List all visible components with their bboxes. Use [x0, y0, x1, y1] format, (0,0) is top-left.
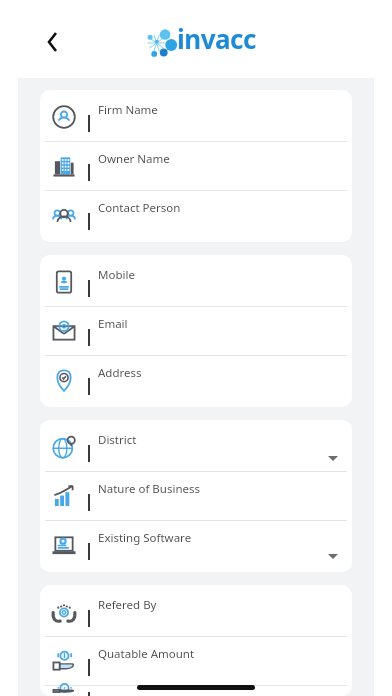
button[interactable]: Back	[36, 27, 66, 57]
button[interactable]: Owner Name	[40, 142, 352, 190]
button[interactable]: Closure Amount	[40, 686, 352, 693]
button[interactable]: District	[40, 423, 352, 471]
button[interactable]: Mobile	[40, 258, 352, 306]
button[interactable]: Existing Software	[40, 521, 352, 569]
button[interactable]: Nature of Business	[40, 472, 352, 520]
staticText: Owner Name	[98, 151, 170, 167]
staticText: Mobile	[98, 267, 135, 283]
button[interactable]: Firm Name	[40, 93, 352, 141]
button[interactable]: Email	[40, 307, 352, 355]
button[interactable]: Contact Person	[40, 191, 352, 239]
staticText: Quatable Amount	[98, 646, 195, 662]
button[interactable]: Quatable Amount	[40, 637, 352, 685]
staticText: Firm Name	[98, 102, 158, 118]
button[interactable]: Address	[40, 356, 352, 404]
staticText: Contact Person	[98, 200, 181, 216]
staticText: invaccs	[177, 21, 264, 65]
staticText: Refered By	[98, 597, 157, 613]
staticText: District	[98, 432, 137, 448]
staticText: Email	[98, 316, 128, 332]
staticText: Address	[98, 365, 142, 381]
staticText: Nature of Business	[98, 481, 201, 497]
button[interactable]: Refered By	[40, 588, 352, 636]
staticText: Existing Software	[98, 530, 192, 546]
